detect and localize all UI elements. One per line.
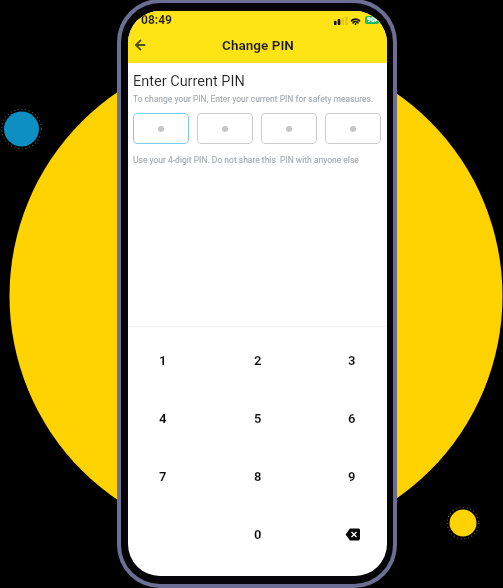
- button[interactable]: 2: [238, 340, 278, 380]
- button[interactable]: 5: [238, 398, 278, 438]
- staticText: 9: [348, 469, 356, 484]
- button[interactable]: 7: [143, 456, 183, 496]
- staticText: 08:49: [141, 13, 172, 27]
- button[interactable]: 4: [143, 398, 183, 438]
- staticText: Use your 4-digit PIN. Do not share this …: [133, 155, 359, 165]
- button[interactable]: 1: [143, 340, 183, 380]
- staticText: Change PIN: [222, 37, 294, 53]
- button[interactable]: 9: [332, 456, 372, 496]
- button[interactable]: PIN digit 3: [261, 113, 317, 144]
- staticText: 2: [254, 353, 262, 368]
- staticText: 4: [159, 411, 167, 426]
- staticText: Enter Current PIN: [133, 73, 245, 90]
- button[interactable]: 8: [238, 456, 278, 496]
- staticText: 90: [367, 16, 375, 24]
- staticText: 3: [348, 353, 356, 368]
- staticText: To change your PIN, Enter your current P…: [133, 94, 374, 104]
- staticText: 8: [254, 469, 262, 484]
- button[interactable]: PIN digit 1: [133, 113, 189, 144]
- button[interactable]: 6: [332, 398, 372, 438]
- staticText: 7: [159, 469, 167, 484]
- staticText: 5: [254, 411, 262, 426]
- button[interactable]: 3: [332, 340, 372, 380]
- button[interactable]: PIN digit 4: [325, 113, 381, 144]
- button[interactable]: PIN digit 2: [197, 113, 253, 144]
- staticText: 0: [254, 527, 262, 542]
- button[interactable]: 0: [238, 514, 278, 554]
- staticText: 1: [159, 353, 167, 368]
- button[interactable]: Backspace: [332, 514, 372, 554]
- staticText: 6: [348, 411, 356, 426]
- button[interactable]: Back: [129, 34, 151, 56]
